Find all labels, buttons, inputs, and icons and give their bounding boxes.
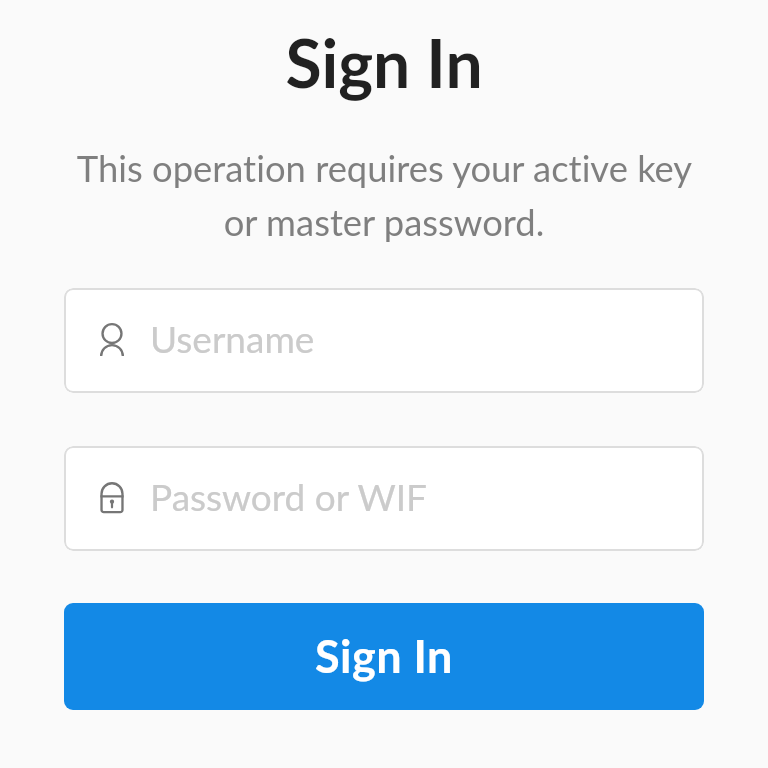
staticText: This operation requires your active key … <box>64 146 704 244</box>
staticText: Sign In <box>315 629 453 683</box>
staticText: Sign In <box>0 23 768 102</box>
staticText: Username <box>150 316 315 360</box>
button[interactable]: Sign In <box>64 603 704 710</box>
other: Account <box>92 321 132 361</box>
button[interactable]: Password <box>64 446 704 551</box>
other: Password <box>92 479 132 519</box>
staticText: Password or WIF <box>150 474 428 518</box>
button[interactable]: Account <box>64 288 704 393</box>
